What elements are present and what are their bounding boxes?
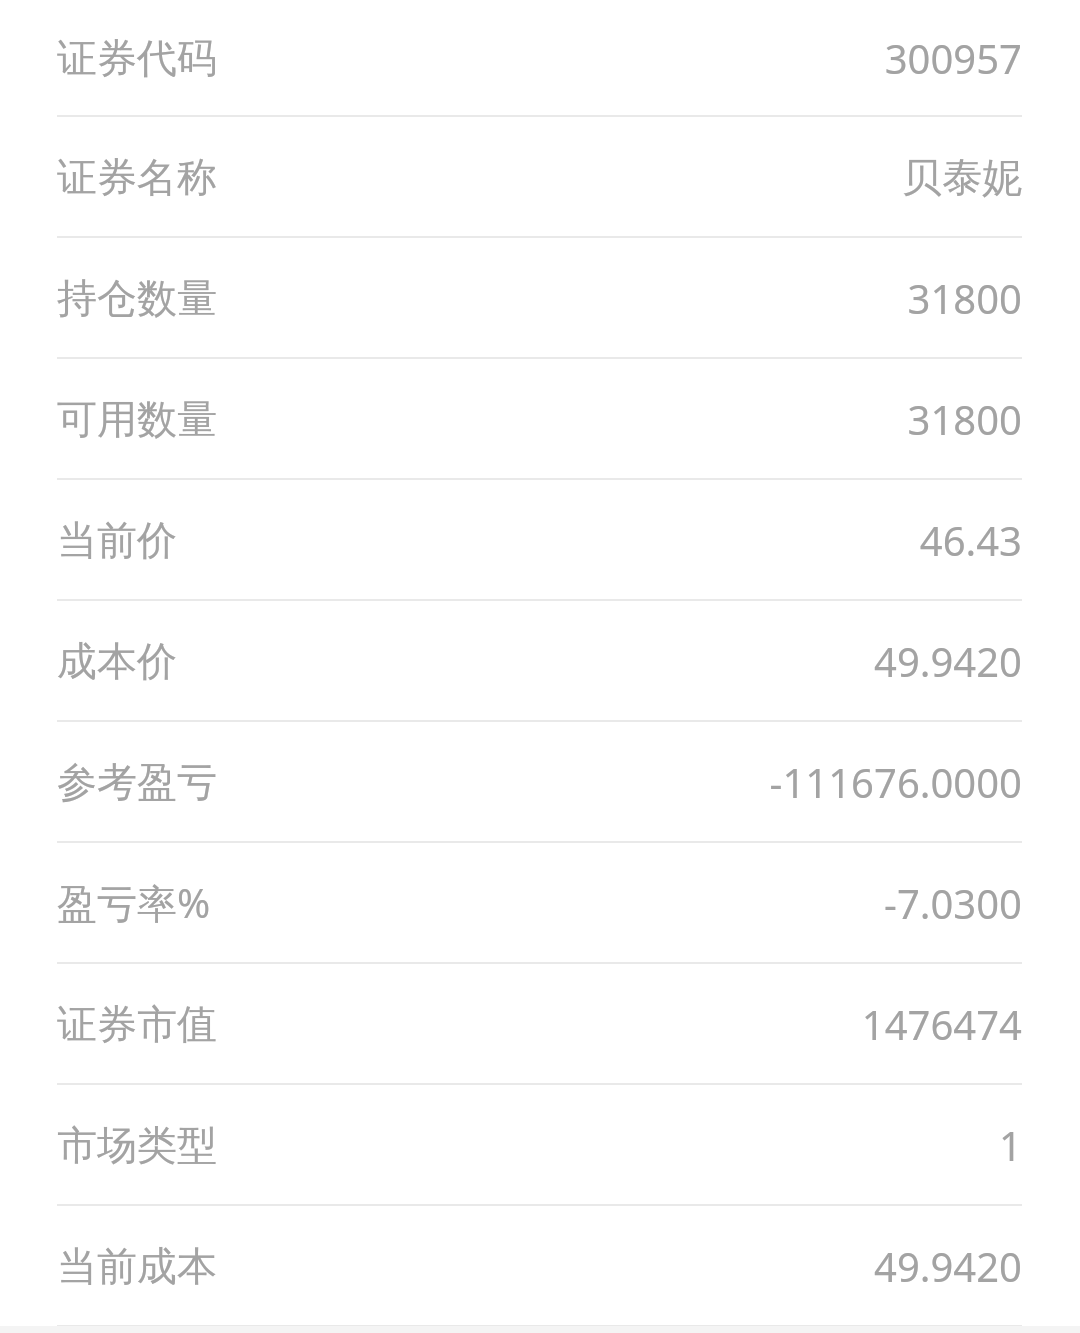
staticText: 证券名称 bbox=[57, 152, 217, 202]
staticText: 可用数量 bbox=[57, 394, 217, 444]
button[interactable]: 成本价 bbox=[0, 601, 1080, 720]
staticText: 参考盈亏 bbox=[57, 757, 217, 807]
staticText: 贝泰妮 bbox=[902, 152, 1022, 202]
button[interactable]: 参考盈亏 bbox=[0, 722, 1080, 841]
staticText: 49.9420 bbox=[874, 634, 1022, 688]
staticText: 盈亏率% bbox=[57, 875, 211, 930]
staticText: 持仓数量 bbox=[57, 273, 217, 323]
staticText: 31800 bbox=[907, 392, 1022, 446]
button[interactable]: 盈亏率% bbox=[0, 843, 1080, 962]
staticText: 1 bbox=[999, 1118, 1022, 1172]
staticText: 当前成本 bbox=[57, 1241, 217, 1291]
staticText: 49.9420 bbox=[874, 1239, 1022, 1293]
button[interactable]: 市场类型 bbox=[0, 1085, 1080, 1204]
button[interactable]: 证券名称 bbox=[0, 117, 1080, 236]
staticText: 证券代码 bbox=[57, 33, 217, 83]
staticText: 当前价 bbox=[57, 515, 177, 565]
button[interactable]: 当前价 bbox=[0, 480, 1080, 599]
staticText: -111676.0000 bbox=[769, 755, 1022, 809]
staticText: 证券市值 bbox=[57, 999, 217, 1049]
button[interactable]: 证券代码 bbox=[0, 0, 1080, 115]
staticText: 1476474 bbox=[861, 997, 1022, 1051]
button[interactable]: 可用数量 bbox=[0, 359, 1080, 478]
staticText: 成本价 bbox=[57, 636, 177, 686]
staticText: 31800 bbox=[907, 271, 1022, 325]
button[interactable]: 证券市值 bbox=[0, 964, 1080, 1083]
staticText: 300957 bbox=[884, 31, 1022, 85]
button[interactable]: 当前成本 bbox=[0, 1206, 1080, 1325]
button[interactable]: 持仓数量 bbox=[0, 238, 1080, 357]
staticText: 市场类型 bbox=[57, 1120, 217, 1170]
staticText: -7.0300 bbox=[884, 876, 1022, 930]
staticText: 46.43 bbox=[919, 513, 1022, 567]
